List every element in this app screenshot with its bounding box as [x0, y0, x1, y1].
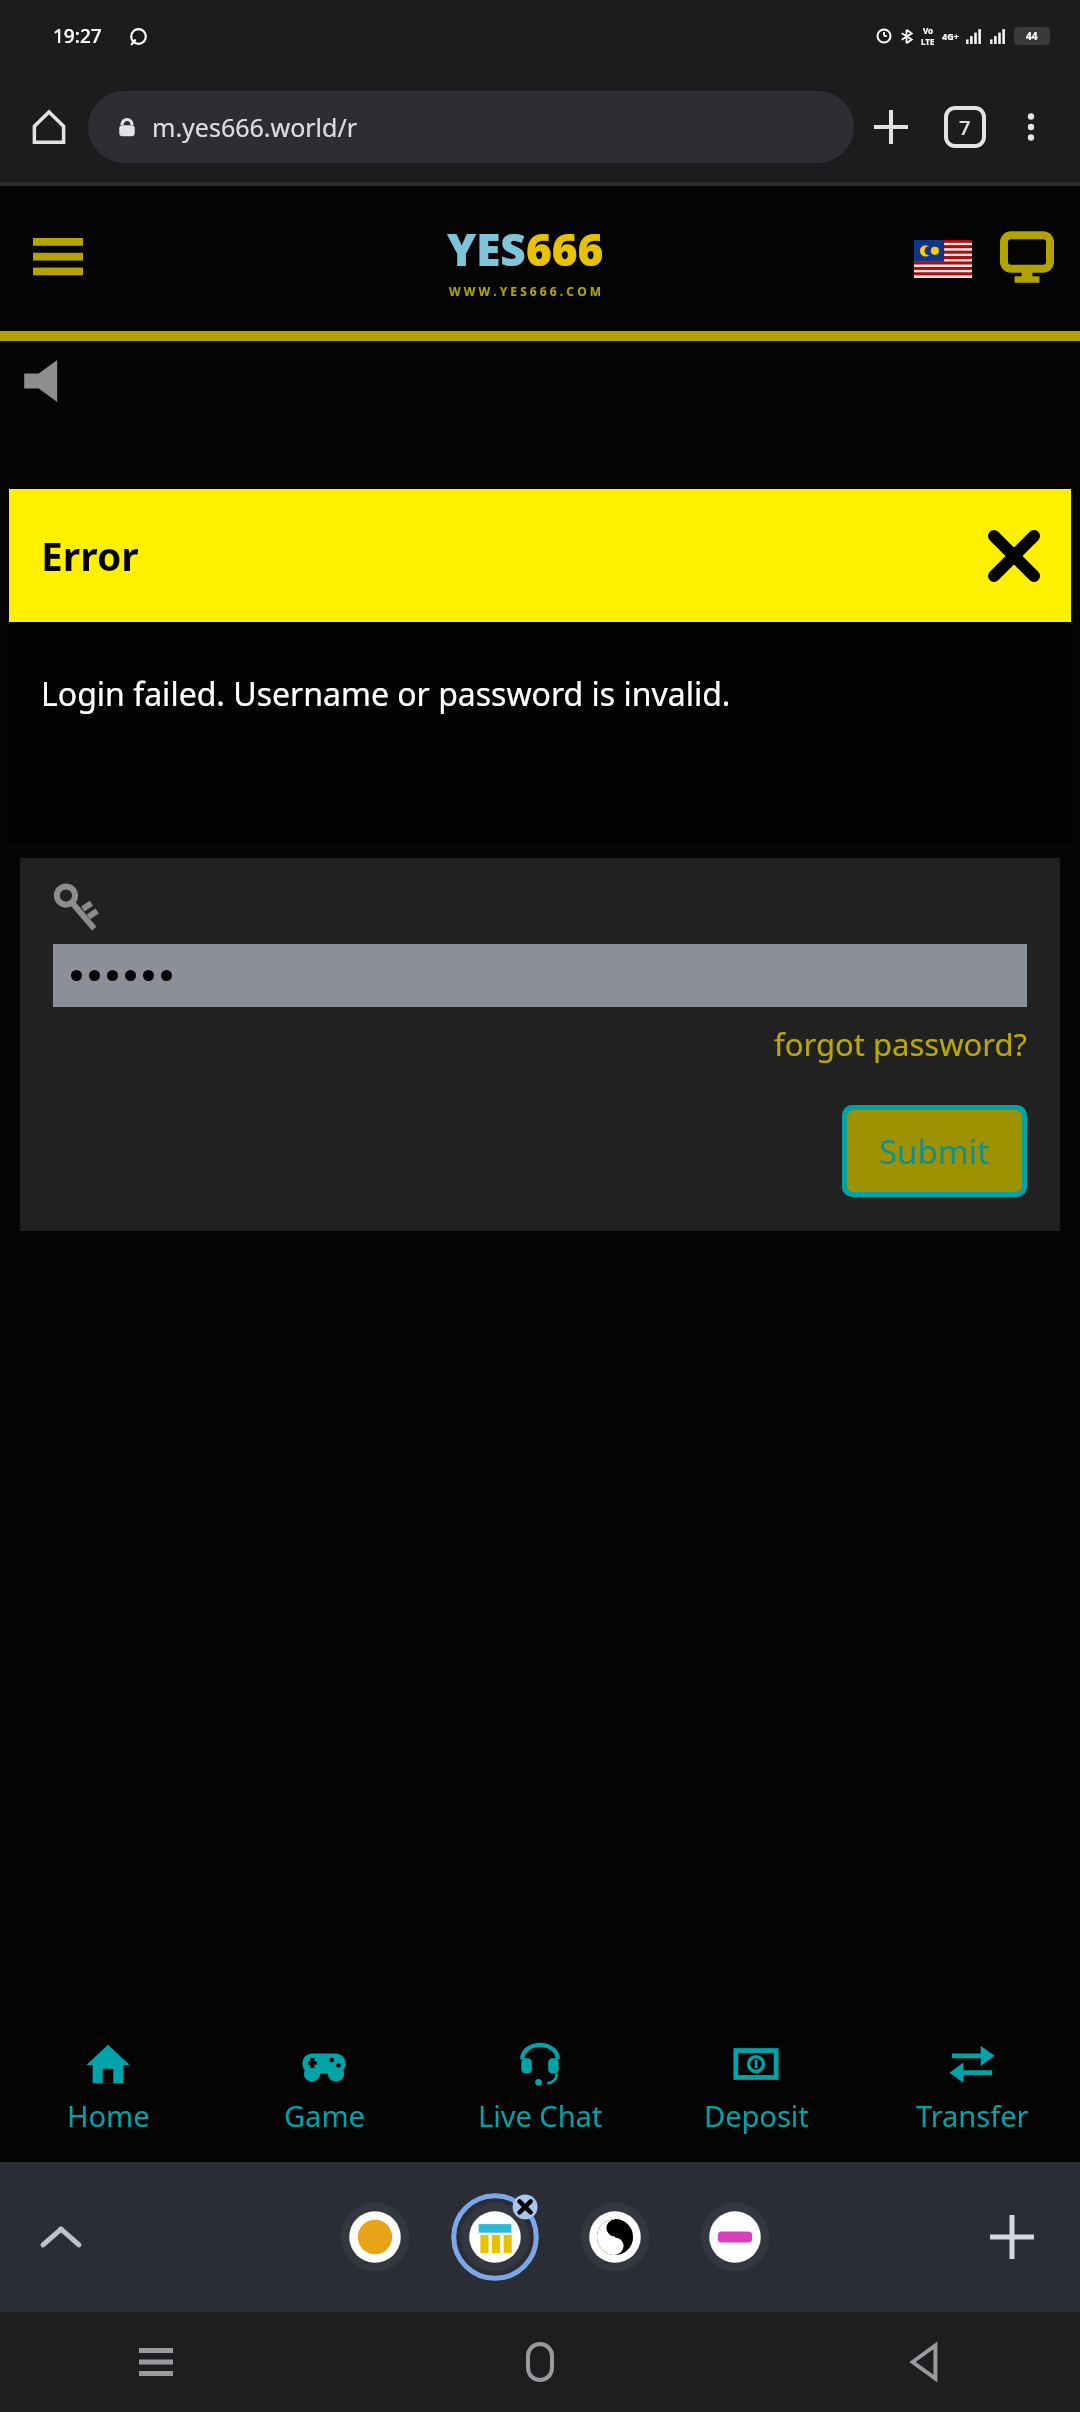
- staticText: W W W . Y E S 6 6 6 . C O M: [449, 283, 602, 299]
- button[interactable]: Desktop site: [1000, 232, 1054, 286]
- button[interactable]: Recent apps: [120, 2326, 192, 2398]
- staticText: 44: [1026, 29, 1038, 43]
- button[interactable]: YES666 tab: [452, 2194, 538, 2280]
- staticText: Login failed. Username or password is in…: [41, 672, 731, 716]
- staticText: Submit: [879, 1129, 990, 1174]
- button[interactable]: Back: [888, 2326, 960, 2398]
- staticText: Transfer: [916, 2096, 1029, 2135]
- staticText: Error: [41, 529, 139, 582]
- staticText: 4G+: [942, 30, 959, 42]
- button[interactable]: [53, 944, 1027, 1007]
- button[interactable]: Live Chat: [432, 2012, 648, 2162]
- staticText: 19:27: [53, 23, 102, 49]
- button[interactable]: Tabs, 7 open: [928, 90, 1002, 164]
- staticText: 7: [959, 114, 971, 141]
- staticText: Vo: [923, 25, 934, 36]
- button[interactable]: Close error: [985, 527, 1043, 585]
- button[interactable]: m.yes666.world/r: [88, 91, 854, 163]
- button[interactable]: Browser tab: [572, 2194, 658, 2280]
- staticText: 666: [526, 219, 604, 279]
- button[interactable]: Transfer: [864, 2012, 1080, 2162]
- staticText: m.yes666.world/r: [152, 110, 358, 144]
- button[interactable]: New tab: [854, 90, 928, 164]
- button[interactable]: Star tab: [332, 2194, 418, 2280]
- staticText: LTE: [921, 36, 935, 47]
- staticText: Deposit: [704, 2096, 809, 2135]
- button[interactable]: Expand tab bar: [28, 2204, 94, 2270]
- staticText: Live Chat: [478, 2096, 603, 2135]
- button[interactable]: Game: [216, 2012, 432, 2162]
- button[interactable]: Add tab: [978, 2203, 1046, 2271]
- button[interactable]: Play2U tab: [692, 2194, 778, 2280]
- button[interactable]: Deposit: [648, 2012, 864, 2162]
- button[interactable]: Home: [20, 98, 78, 156]
- button[interactable]: Home: [504, 2326, 576, 2398]
- staticText: Game: [284, 2096, 365, 2135]
- button[interactable]: Home: [0, 2012, 216, 2162]
- button[interactable]: forgot password?: [774, 1023, 1027, 1065]
- staticText: YES: [447, 219, 526, 279]
- button[interactable]: More options: [1002, 98, 1060, 156]
- button[interactable]: Language: Malaysia: [914, 240, 972, 278]
- button[interactable]: Submit: [847, 1110, 1022, 1192]
- button[interactable]: Menu: [28, 229, 88, 289]
- staticText: Home: [67, 2096, 150, 2135]
